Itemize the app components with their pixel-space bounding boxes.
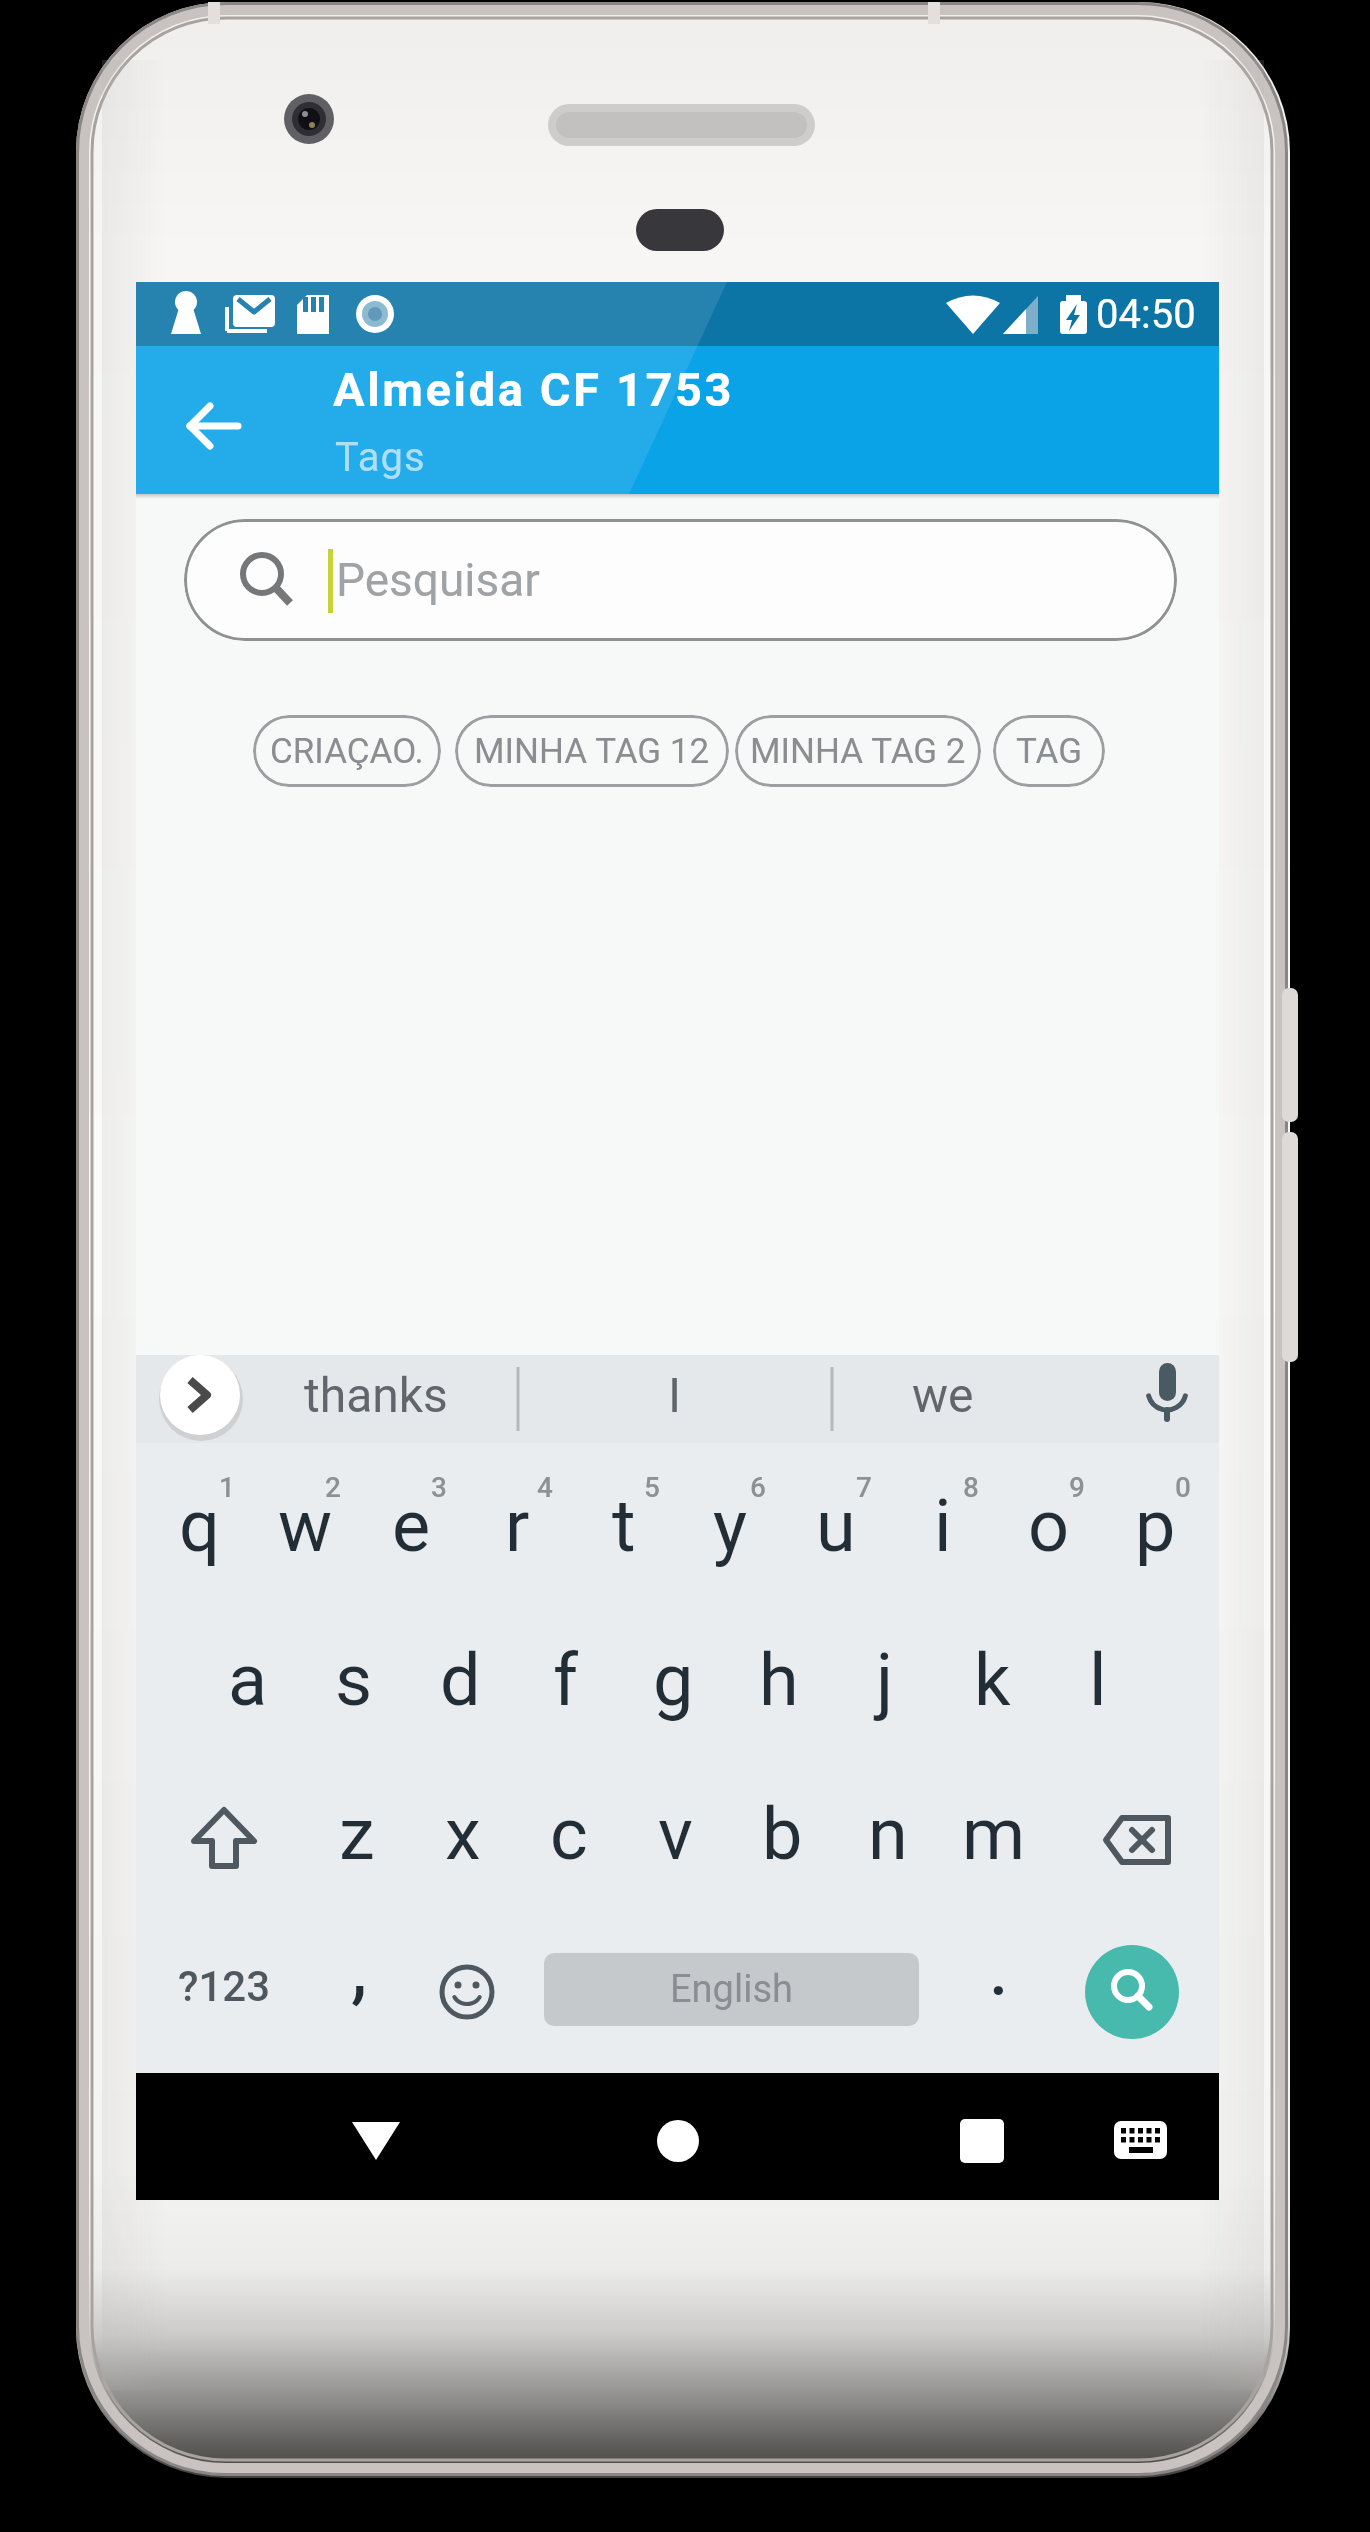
staticText: 1	[219, 1471, 235, 1504]
button[interactable]: s	[302, 1610, 406, 1750]
staticText: v	[658, 1792, 693, 1876]
button[interactable]: h	[727, 1610, 831, 1750]
staticText: ,	[351, 1919, 368, 2015]
button[interactable]: b	[730, 1764, 834, 1904]
staticText: 3	[431, 1471, 447, 1504]
button[interactable]: e	[359, 1456, 463, 1596]
button[interactable]: Pesquisar	[184, 519, 1177, 641]
staticText: m	[962, 1792, 1026, 1876]
staticText: t	[612, 1484, 636, 1568]
button[interactable]	[932, 2091, 1032, 2191]
staticText: Almeida CF 1753	[333, 362, 735, 417]
staticText: c	[550, 1792, 588, 1876]
staticText: l	[1089, 1638, 1107, 1722]
staticText: 6	[750, 1471, 766, 1504]
button[interactable]: j	[833, 1610, 937, 1750]
button[interactable]: v	[623, 1764, 727, 1904]
staticText: English	[670, 1967, 793, 2012]
staticText: z	[339, 1792, 375, 1876]
staticText: n	[868, 1792, 908, 1876]
staticText: k	[974, 1638, 1011, 1722]
staticText: I	[668, 1367, 682, 1423]
staticText: b	[762, 1792, 803, 1876]
button[interactable]: r	[465, 1456, 569, 1596]
button[interactable]: .	[959, 1912, 1039, 2022]
staticText: p	[1135, 1484, 1176, 1568]
staticText: 5	[644, 1471, 660, 1504]
staticText: 0	[1175, 1471, 1191, 1504]
button[interactable]: n	[836, 1764, 940, 1904]
button[interactable]: m	[942, 1764, 1046, 1904]
button[interactable]: c	[517, 1764, 621, 1904]
staticText: .	[988, 1919, 1010, 2015]
button[interactable]: a	[196, 1610, 300, 1750]
button[interactable]	[628, 2091, 728, 2191]
staticText: q	[179, 1484, 220, 1568]
button[interactable]	[1081, 1783, 1191, 1893]
button[interactable]: MINHA TAG 12	[455, 715, 729, 787]
button[interactable]: g	[621, 1610, 725, 1750]
staticText: o	[1028, 1484, 1070, 1568]
staticText: e	[392, 1484, 431, 1568]
staticText: TAG	[1016, 731, 1083, 772]
button[interactable]: i	[891, 1456, 995, 1596]
button[interactable]: I	[535, 1351, 815, 1439]
button[interactable]: z	[305, 1764, 409, 1904]
staticText: MINHA TAG 12	[474, 731, 710, 772]
staticText: thanks	[304, 1367, 448, 1423]
staticText: j	[876, 1638, 894, 1722]
button[interactable]: q	[147, 1456, 251, 1596]
button[interactable]: o	[997, 1456, 1101, 1596]
staticText: r	[505, 1484, 530, 1568]
button[interactable]	[326, 2091, 426, 2191]
staticText: 4	[537, 1471, 553, 1504]
staticText: 2	[325, 1471, 341, 1504]
button[interactable]: p	[1103, 1456, 1207, 1596]
staticText: f	[553, 1638, 579, 1722]
button[interactable]: CRIAÇAO.	[253, 715, 441, 787]
button[interactable]: we	[803, 1351, 1083, 1439]
button[interactable]: English	[544, 1953, 919, 2026]
button[interactable]: thanks	[236, 1351, 516, 1439]
staticText: g	[653, 1638, 694, 1722]
staticText: s	[335, 1638, 373, 1722]
button[interactable]: f	[514, 1610, 618, 1750]
staticText: y	[713, 1484, 748, 1568]
button[interactable]: u	[784, 1456, 888, 1596]
staticText: a	[228, 1638, 268, 1722]
staticText: x	[445, 1792, 481, 1876]
staticText: i	[934, 1484, 952, 1568]
button[interactable]: w	[253, 1456, 357, 1596]
button[interactable]: MINHA TAG 2	[735, 715, 981, 787]
staticText: MINHA TAG 2	[750, 731, 966, 772]
button[interactable]: x	[411, 1764, 515, 1904]
button[interactable]: l	[1046, 1610, 1150, 1750]
button[interactable]: TAG	[993, 715, 1105, 787]
staticText: h	[759, 1638, 799, 1722]
button[interactable]: ,	[319, 1912, 399, 2022]
button[interactable]: k	[940, 1610, 1044, 1750]
staticText: we	[912, 1367, 974, 1423]
button[interactable]: y	[678, 1456, 782, 1596]
button[interactable]	[412, 1937, 522, 2047]
button[interactable]: d	[408, 1610, 512, 1750]
staticText: CRIAÇAO.	[270, 731, 424, 772]
staticText: w	[278, 1484, 333, 1568]
button[interactable]	[174, 384, 254, 464]
button[interactable]: t	[572, 1456, 676, 1596]
button[interactable]	[168, 1783, 278, 1893]
staticText: Pesquisar	[336, 553, 540, 607]
staticText: d	[440, 1638, 481, 1722]
button[interactable]	[1077, 1937, 1187, 2047]
button[interactable]: ?123	[154, 1936, 294, 2036]
staticText: ?123	[178, 1962, 271, 2011]
staticText: 04:50	[1096, 291, 1196, 338]
staticText: 8	[963, 1471, 979, 1504]
staticText: Tags	[335, 434, 426, 481]
button[interactable]	[160, 1355, 240, 1435]
staticText: 9	[1069, 1471, 1085, 1504]
staticText: u	[816, 1484, 856, 1568]
staticText: 7	[856, 1471, 872, 1504]
button[interactable]	[1090, 2091, 1190, 2191]
button[interactable]	[1127, 1355, 1207, 1443]
